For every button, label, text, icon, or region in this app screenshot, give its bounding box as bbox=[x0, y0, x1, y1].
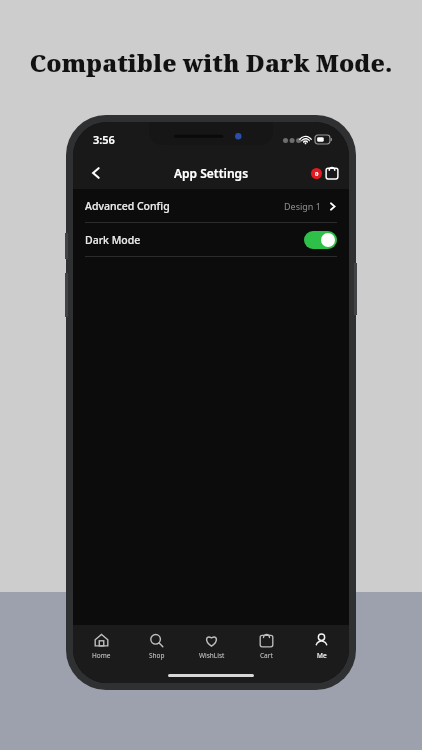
staticText: Advanced Config bbox=[85, 199, 170, 213]
staticText: Cart bbox=[260, 651, 273, 660]
staticText: App Settings bbox=[174, 165, 249, 181]
staticText: 3:56 bbox=[93, 132, 115, 147]
staticText: Dark Mode bbox=[85, 233, 141, 247]
staticText: Compatible with Dark Mode. bbox=[29, 46, 393, 79]
staticText: Me bbox=[317, 651, 327, 660]
button[interactable]: Shop bbox=[129, 625, 184, 667]
staticText: Design 1 bbox=[284, 200, 321, 212]
button[interactable]: Advanced Config bbox=[73, 189, 349, 222]
button[interactable]: Cart bbox=[239, 625, 294, 667]
button[interactable]: Home bbox=[73, 625, 129, 667]
staticText: Shop bbox=[149, 651, 165, 660]
staticText: WishList bbox=[199, 651, 225, 660]
button[interactable]: Dark Mode toggle bbox=[304, 231, 337, 249]
button[interactable]: WishList bbox=[184, 625, 239, 667]
button[interactable]: Dark Mode bbox=[73, 223, 349, 256]
staticText: 0 bbox=[315, 170, 319, 178]
button[interactable]: Cart bbox=[311, 166, 339, 180]
staticText: Home bbox=[92, 651, 111, 660]
button[interactable]: Back bbox=[81, 158, 111, 188]
button[interactable]: Me bbox=[294, 625, 349, 667]
